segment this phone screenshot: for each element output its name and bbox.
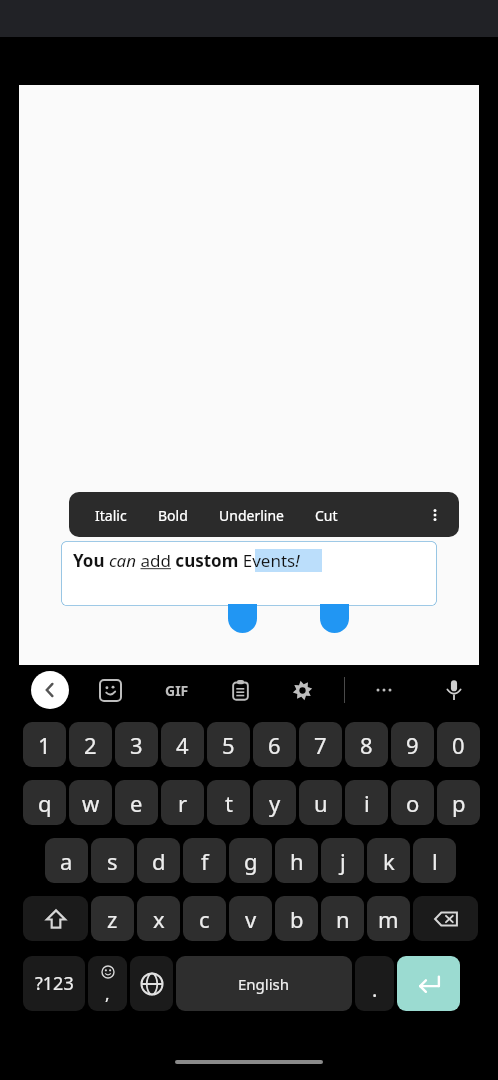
staticText: a (60, 846, 73, 876)
button[interactable]: x (137, 896, 180, 941)
button[interactable]: 6 (253, 722, 296, 767)
button[interactable]: You can add custom Events! (61, 541, 437, 606)
staticText: f (201, 846, 209, 876)
staticText: 1 (38, 730, 51, 760)
staticText: c (199, 904, 210, 934)
button[interactable]: Enter (397, 956, 460, 1011)
button[interactable]: s (91, 838, 134, 883)
button[interactable]: ?123 (23, 956, 85, 1011)
button[interactable]: 9 (391, 722, 434, 767)
button[interactable]: Bold (158, 506, 188, 525)
staticText: . (372, 976, 378, 1003)
button[interactable]: k (367, 838, 410, 883)
staticText: e (130, 788, 143, 818)
button[interactable]: i (345, 780, 388, 825)
staticText: 4 (176, 730, 189, 760)
staticText: r (178, 788, 188, 818)
staticText: , (105, 982, 110, 1005)
staticText: k (383, 846, 395, 876)
button[interactable]: t (207, 780, 250, 825)
staticText: d (152, 846, 166, 876)
button[interactable]: e (115, 780, 158, 825)
staticText: 9 (406, 730, 419, 760)
button[interactable]: d (137, 838, 180, 883)
staticText: w (82, 788, 100, 818)
button[interactable]: z (91, 896, 134, 941)
button[interactable]: g (229, 838, 272, 883)
button[interactable]: q (23, 780, 66, 825)
button[interactable]: 1 (23, 722, 66, 767)
button[interactable]: c (183, 896, 226, 941)
staticText: l (432, 846, 438, 876)
staticText: Bold (158, 506, 188, 525)
button[interactable]: Change language (130, 956, 173, 1011)
staticText: Underline (219, 506, 284, 525)
button[interactable]: u (299, 780, 342, 825)
staticText: z (107, 904, 118, 934)
staticText: p (452, 788, 466, 818)
button[interactable]: w (69, 780, 112, 825)
staticText: j (340, 846, 346, 876)
button[interactable]: o (391, 780, 434, 825)
button[interactable]: v (229, 896, 272, 941)
button[interactable]: h (275, 838, 318, 883)
staticText: s (107, 846, 118, 876)
staticText: 8 (360, 730, 373, 760)
button[interactable]: Italic (95, 506, 127, 525)
staticText: GIF (165, 681, 189, 700)
staticText: 0 (452, 730, 465, 760)
button[interactable]: Cut (315, 506, 338, 525)
staticText: g (244, 846, 258, 876)
button[interactable]: 8 (345, 722, 388, 767)
button[interactable]: b (275, 896, 318, 941)
button[interactable]: 2 (69, 722, 112, 767)
button[interactable]: p (437, 780, 480, 825)
button[interactable]: Clipboard (223, 673, 257, 707)
button[interactable]: Backspace (413, 896, 478, 941)
button[interactable]: English (176, 956, 352, 1011)
button[interactable]: . (355, 956, 394, 1011)
button[interactable]: a (45, 838, 88, 883)
staticText: o (406, 788, 420, 818)
button[interactable]: r (161, 780, 204, 825)
staticText: m (378, 904, 399, 934)
staticText: Italic (95, 506, 127, 525)
button[interactable]: Emoji and comma (88, 956, 127, 1011)
staticText: v (245, 904, 257, 934)
staticText: y (269, 788, 281, 818)
button[interactable]: 0 (437, 722, 480, 767)
button[interactable]: n (321, 896, 364, 941)
button[interactable]: GIF (157, 670, 197, 710)
button[interactable]: More (367, 673, 401, 707)
staticText: Cut (315, 506, 338, 525)
staticText: t (225, 788, 233, 818)
staticText: b (290, 904, 304, 934)
button[interactable]: l (413, 838, 456, 883)
button[interactable]: j (321, 838, 364, 883)
staticText: English (238, 974, 290, 994)
button[interactable]: Stickers (93, 673, 127, 707)
button[interactable]: More options (417, 497, 453, 533)
button[interactable]: 3 (115, 722, 158, 767)
staticText: n (336, 904, 350, 934)
button[interactable]: Voice input (436, 672, 472, 708)
button[interactable]: 4 (161, 722, 204, 767)
staticText: x (153, 904, 165, 934)
staticText: 7 (314, 730, 327, 760)
staticText: i (364, 788, 370, 818)
staticText: h (290, 846, 304, 876)
button[interactable]: y (253, 780, 296, 825)
staticText: 2 (84, 730, 97, 760)
button[interactable]: 5 (207, 722, 250, 767)
staticText: 5 (222, 730, 235, 760)
button[interactable]: Shift (23, 896, 88, 941)
button[interactable]: Settings (285, 673, 319, 707)
button[interactable]: m (367, 896, 410, 941)
staticText: u (314, 788, 328, 818)
staticText: q (38, 788, 52, 818)
button[interactable]: Back (31, 671, 69, 709)
button[interactable]: Underline (219, 506, 284, 525)
button[interactable]: f (183, 838, 226, 883)
staticText: 6 (268, 730, 281, 760)
button[interactable]: 7 (299, 722, 342, 767)
